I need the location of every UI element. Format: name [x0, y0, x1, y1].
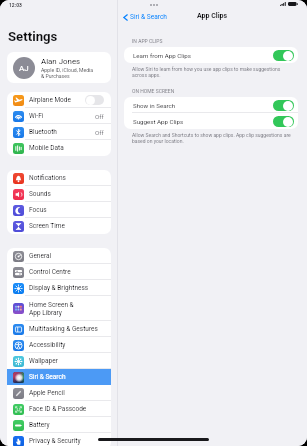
button[interactable]: Show in Search [124, 97, 298, 113]
button[interactable]: Screen Time [7, 218, 111, 234]
staticText: Wi-Fi [29, 112, 44, 120]
button[interactable]: Control Centre [7, 264, 111, 280]
staticText: App Clips [197, 12, 228, 20]
button[interactable]: Multitasking & Gestures [7, 321, 111, 337]
staticText: Screen Time [29, 222, 65, 230]
button[interactable]: Learn from App Clips [124, 47, 298, 63]
staticText: Off [95, 129, 104, 136]
staticText: Mobile Data [29, 144, 64, 152]
button[interactable]: Bluetooth [7, 124, 111, 140]
staticText: Siri & Search [130, 13, 167, 21]
staticText: Display & Brightness [29, 284, 89, 292]
staticText: Multitasking & Gestures [29, 325, 98, 333]
button[interactable]: Suggest App Clips [124, 113, 298, 129]
staticText: Focus [29, 206, 47, 214]
button[interactable]: General [7, 248, 111, 264]
staticText: Wallpaper [29, 357, 58, 365]
staticText: & Purchases [41, 73, 70, 79]
staticText: ON HOME SCREEN [132, 88, 175, 94]
staticText: Battery [29, 421, 50, 429]
staticText: Privacy & Security [29, 437, 81, 445]
button[interactable]: Notifications [7, 170, 111, 186]
staticText: Control Centre [29, 268, 71, 276]
button[interactable]: Mobile Data [7, 140, 111, 156]
staticText: based on your location. [132, 138, 184, 144]
staticText: Suggest App Clips [133, 118, 273, 125]
button[interactable]: AJ [7, 52, 111, 83]
staticText: AJ [19, 64, 29, 73]
button[interactable]: Accessibility [7, 337, 111, 353]
button[interactable]: Siri & Search [121, 11, 171, 23]
staticText: Airplane Mode [29, 96, 71, 104]
staticText: General [29, 252, 52, 260]
staticText: Sounds [29, 190, 51, 198]
staticText: Accessibility [29, 341, 66, 349]
staticText: Notifications [29, 174, 66, 182]
staticText: Bluetooth [29, 128, 57, 136]
staticText: Show in Search [133, 102, 273, 109]
button[interactable]: Apple Pencil [7, 385, 111, 401]
staticText: Off [95, 113, 104, 120]
button[interactable]: Siri & Search [7, 369, 111, 385]
staticText: App Library [29, 309, 62, 317]
staticText: IN APP CLIPS [132, 38, 163, 44]
button[interactable]: Home Screen & [7, 296, 111, 321]
staticText: Alan Jones [41, 57, 81, 66]
button[interactable]: Wi-Fi [7, 108, 111, 124]
staticText: Apple Pencil [29, 389, 65, 397]
button[interactable]: Privacy & Security [7, 433, 111, 446]
staticText: Face ID & Passcode [29, 405, 87, 413]
staticText: Home Screen & [29, 301, 74, 309]
button[interactable]: Battery [7, 417, 111, 433]
staticText: Learn from App Clips [133, 52, 273, 59]
button[interactable]: Sounds [7, 186, 111, 202]
staticText: Siri & Search [29, 373, 66, 381]
staticText: 12:03 [9, 2, 22, 8]
staticText: across apps. [132, 72, 161, 78]
button[interactable]: Wallpaper [7, 353, 111, 369]
button[interactable]: Display & Brightness [7, 280, 111, 296]
staticText: Allow Search and Shortcuts to show app c… [132, 132, 291, 138]
staticText: Apple ID, iCloud, Media [41, 67, 94, 73]
button[interactable]: Airplane Mode [7, 92, 111, 108]
button[interactable]: Focus [7, 202, 111, 218]
staticText: Allow Siri to learn from how you use app… [132, 66, 281, 72]
button[interactable]: Face ID & Passcode [7, 401, 111, 417]
staticText: Settings [8, 29, 58, 44]
